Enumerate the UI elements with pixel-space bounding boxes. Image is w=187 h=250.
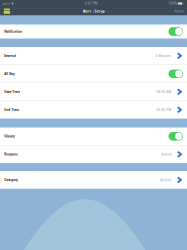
staticText: General — [159, 178, 171, 182]
staticText: End Time — [4, 108, 19, 112]
staticText: Notification — [4, 29, 22, 33]
button[interactable]: All Day — [0, 65, 187, 83]
button[interactable]: End Time — [0, 101, 187, 119]
staticText: Ringtone — [4, 152, 18, 156]
staticText: 2 Minutes — [155, 54, 171, 58]
staticText: 05:00 PM — [156, 108, 171, 112]
staticText: Start Time — [4, 90, 20, 94]
button[interactable]: Vibrate — [0, 127, 187, 145]
staticText: 08:00 AM — [156, 90, 171, 94]
button[interactable]: Reset — [171, 8, 187, 14]
staticText: Alert - Setup — [82, 9, 104, 13]
staticText: Default — [160, 152, 171, 156]
button[interactable]: Notification — [0, 24, 187, 38]
staticText: Carrier — [2, 2, 11, 5]
staticText: 4:41 PM — [85, 2, 97, 5]
button[interactable]: Ringtone — [0, 145, 187, 163]
staticText: All Day — [4, 72, 15, 76]
button[interactable]: Category — [0, 171, 187, 189]
staticText: Vibrate — [4, 134, 15, 138]
button[interactable]: Interval — [0, 47, 187, 65]
staticText: Category — [4, 178, 18, 182]
staticText: Reset — [174, 9, 183, 13]
staticText: 100% — [169, 2, 177, 5]
staticText: ▼ — [11, 2, 13, 5]
button[interactable]: Menu — [2, 7, 11, 15]
button[interactable]: Start Time — [0, 83, 187, 101]
staticText: Interval — [4, 54, 16, 58]
